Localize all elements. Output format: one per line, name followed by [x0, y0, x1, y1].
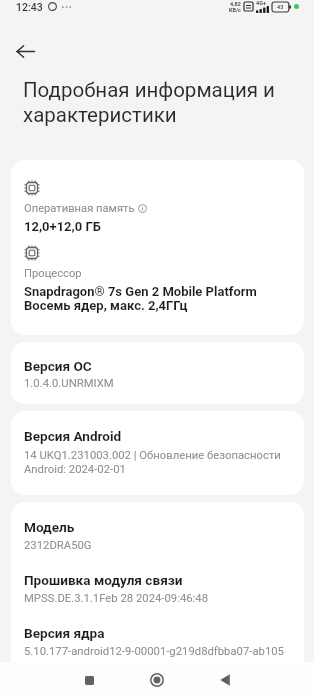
- button[interactable]: Версия Android: [11, 411, 304, 495]
- button[interactable]: Recent apps: [72, 663, 106, 697]
- staticText: 4G+: [256, 0, 266, 6]
- staticText: 5.10.177-android12-9-00001-g219d8dfbba07…: [24, 645, 284, 658]
- staticText: 2312DRA50G: [24, 539, 92, 552]
- staticText: Модель: [24, 519, 75, 535]
- staticText: 1.0.4.0.UNRMIXM: [24, 377, 114, 390]
- staticText: Snapdragon® 7s Gen 2 Mobile Platform: [24, 285, 257, 299]
- button[interactable]: Модель: [11, 502, 304, 698]
- button[interactable]: Оперативная память: [11, 160, 304, 335]
- staticText: 12:43: [16, 1, 43, 13]
- staticText: Версия ядра: [24, 625, 105, 641]
- staticText: Восемь ядер, макс. 2,4ГГц: [24, 299, 188, 313]
- staticText: Прошивка модуля связи: [24, 572, 183, 588]
- staticText: KB/c: [229, 7, 241, 13]
- staticText: Android: 2024-02-01: [24, 462, 126, 476]
- staticText: Подробная информация и: [23, 78, 275, 103]
- staticText: 12,0+12,0 ГБ: [24, 219, 101, 234]
- button[interactable]: Back: [208, 663, 242, 697]
- button[interactable]: Back: [8, 34, 42, 68]
- staticText: MPSS.DE.3.1.1Feb 28 2024-09:46:48: [24, 592, 209, 605]
- button[interactable]: Home: [140, 663, 174, 697]
- staticText: характеристики: [23, 103, 177, 128]
- staticText: 43: [277, 4, 284, 10]
- staticText: Версия Android: [24, 428, 122, 444]
- staticText: Версия ОС: [24, 358, 92, 374]
- button[interactable]: Версия ОС: [11, 342, 304, 404]
- staticText: 4,82: [230, 1, 241, 7]
- staticText: Оперативная память: [24, 202, 135, 215]
- staticText: Процессор: [24, 267, 82, 280]
- staticText: 14 UKQ1.231003.002 | Обновление безопасн…: [24, 448, 281, 462]
